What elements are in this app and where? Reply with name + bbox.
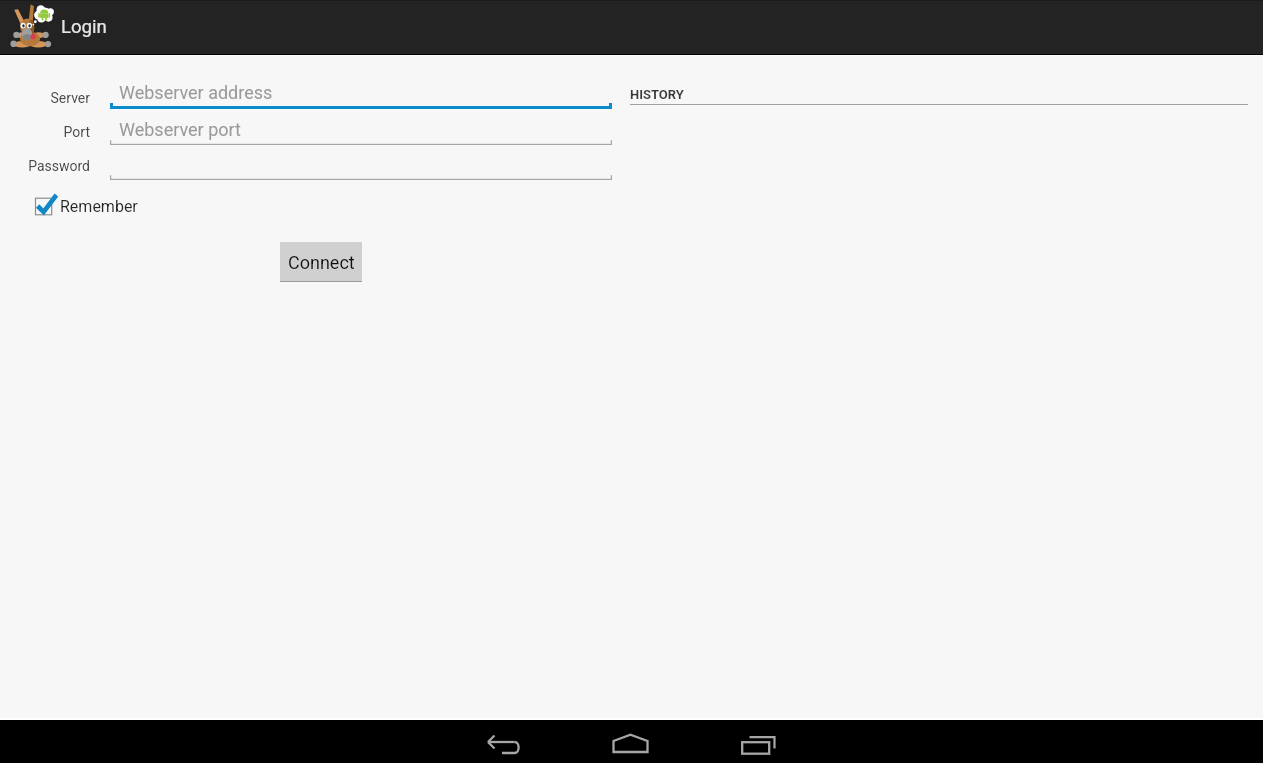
staticText: Password	[28, 158, 90, 174]
staticText: HISTORY	[630, 87, 684, 102]
button[interactable]: Remember	[33, 193, 138, 219]
staticText: Server	[50, 90, 90, 106]
staticText: Login	[61, 16, 107, 38]
staticText: Webserver port	[119, 119, 241, 140]
button[interactable]: Connect	[280, 242, 362, 281]
button[interactable]: Recent apps	[728, 720, 784, 763]
button[interactable]: Back	[476, 720, 532, 763]
button[interactable]: Webserver address	[110, 79, 612, 109]
staticText: Webserver address	[119, 82, 273, 103]
other: aMule app icon	[8, 4, 54, 50]
button[interactable]: Home	[602, 720, 658, 763]
button[interactable]	[110, 150, 612, 180]
button[interactable]: aMule app icon	[0, 0, 119, 54]
staticText: Port	[63, 124, 90, 140]
staticText: Remember	[60, 197, 138, 216]
button[interactable]: Webserver port	[110, 115, 612, 145]
staticText: Connect	[288, 252, 355, 273]
